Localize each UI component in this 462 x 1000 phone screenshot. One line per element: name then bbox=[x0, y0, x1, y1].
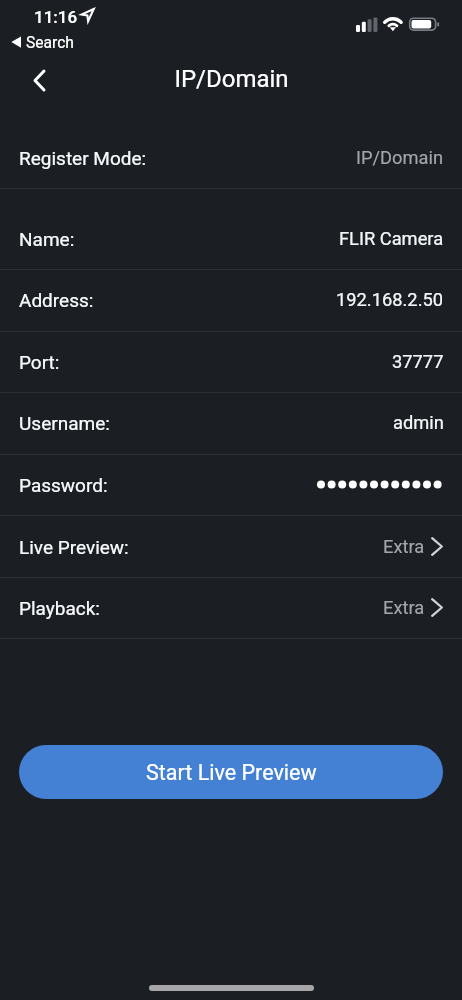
button[interactable]: Playback: bbox=[0, 577, 462, 638]
staticText: 37777 bbox=[392, 351, 444, 372]
staticText: Name: bbox=[19, 228, 75, 250]
staticText: Search bbox=[26, 34, 74, 52]
staticText: FLIR Camera bbox=[339, 228, 444, 249]
staticText: Live Preview: bbox=[19, 536, 129, 558]
staticText: admin bbox=[393, 412, 444, 433]
button[interactable]: Password: bbox=[0, 454, 462, 515]
button[interactable]: Live Preview: bbox=[0, 516, 462, 577]
button[interactable]: Back bbox=[22, 63, 56, 97]
button[interactable]: Start Live Preview bbox=[19, 745, 443, 799]
staticText: IP/Domain bbox=[174, 65, 289, 93]
staticText: 192.168.2.50 bbox=[336, 289, 444, 310]
button[interactable]: Register Mode: bbox=[0, 127, 462, 188]
staticText: Password: bbox=[19, 474, 108, 496]
staticText: Extra bbox=[383, 597, 425, 618]
staticText: 11:16 bbox=[34, 7, 78, 27]
staticText: IP/Domain bbox=[356, 147, 444, 168]
staticText: Extra bbox=[383, 536, 425, 557]
button[interactable]: Address: bbox=[0, 269, 462, 330]
staticText: Username: bbox=[19, 412, 110, 434]
staticText: Start Live Preview bbox=[146, 760, 317, 785]
button[interactable]: Username: bbox=[0, 392, 462, 453]
staticText: Port: bbox=[19, 351, 60, 373]
staticText: Register Mode: bbox=[19, 147, 147, 169]
staticText: Address: bbox=[19, 289, 94, 311]
button[interactable]: Name: bbox=[0, 208, 462, 269]
staticText: Playback: bbox=[19, 597, 100, 619]
button[interactable]: Port: bbox=[0, 331, 462, 392]
